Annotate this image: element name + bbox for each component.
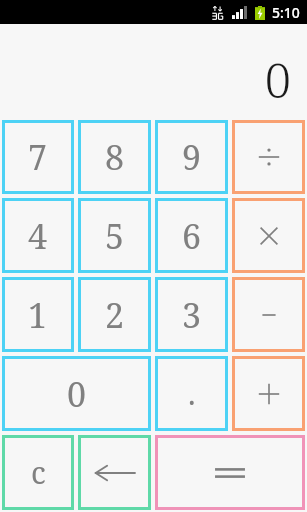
button[interactable]: 4: [5, 201, 71, 270]
button[interactable]: Minus: [235, 280, 302, 349]
button[interactable]: Clear: [5, 438, 71, 507]
button[interactable]: 7: [5, 123, 71, 191]
button[interactable]: Multiply: [235, 201, 302, 270]
button[interactable]: 9: [158, 123, 225, 191]
staticText: 6: [182, 213, 202, 259]
staticText: 5: [105, 213, 125, 259]
staticText: 0: [264, 48, 291, 112]
button[interactable]: 6: [158, 201, 225, 270]
staticText: c: [31, 452, 46, 493]
button[interactable]: 1: [5, 280, 71, 349]
staticText: 3: [182, 292, 202, 338]
button[interactable]: 3: [158, 280, 225, 349]
staticText: 7: [28, 134, 48, 180]
button[interactable]: 2: [81, 280, 148, 349]
button[interactable]: Backspace: [81, 438, 148, 507]
staticText: 8: [105, 134, 125, 180]
staticText: 1: [28, 292, 48, 338]
staticText: 9: [182, 134, 202, 180]
staticText: .: [188, 373, 196, 414]
button[interactable]: Equals: [158, 438, 302, 507]
button[interactable]: Divide: [235, 123, 302, 191]
button[interactable]: 5: [81, 201, 148, 270]
staticText: 4: [28, 213, 48, 259]
button[interactable]: Plus: [235, 359, 302, 428]
button[interactable]: 8: [81, 123, 148, 191]
staticText: 2: [105, 292, 125, 338]
button[interactable]: 0: [5, 359, 148, 428]
staticText: 0: [67, 371, 87, 417]
button[interactable]: .: [158, 359, 225, 428]
staticText: 5:10: [272, 3, 300, 22]
